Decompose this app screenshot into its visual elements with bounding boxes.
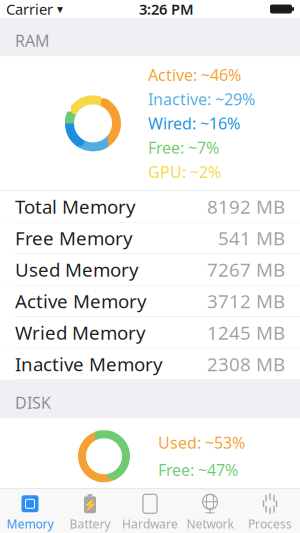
- staticText: Active: ~46%: [148, 64, 241, 85]
- staticText: 3:26 PM: [139, 0, 194, 19]
- staticText: 1245 MB: [207, 320, 285, 345]
- button[interactable]: Network: [180, 489, 240, 533]
- staticText: Wired: ~16%: [148, 113, 240, 134]
- button[interactable]: ⚡: [60, 489, 120, 533]
- staticText: 7267 MB: [207, 257, 285, 282]
- staticText: 3712 MB: [207, 289, 285, 313]
- button[interactable]: Used Memory: [0, 254, 300, 285]
- button[interactable]: Process: [240, 489, 300, 533]
- staticText: Battery: [69, 516, 110, 532]
- button[interactable]: Memory: [0, 489, 60, 533]
- button[interactable]: Wried Memory: [0, 317, 300, 348]
- staticText: Active Memory: [15, 289, 147, 313]
- staticText: Wried Memory: [15, 320, 146, 345]
- staticText: Used: ~53%: [158, 432, 245, 453]
- staticText: Memory: [6, 516, 53, 532]
- button[interactable]: Free Memory: [0, 222, 300, 254]
- staticText: Total Memory: [15, 194, 136, 219]
- staticText: Free: ~7%: [148, 137, 219, 158]
- staticText: ⚡: [82, 498, 97, 512]
- staticText: Network: [186, 516, 233, 532]
- staticText: Free: ~47%: [158, 459, 238, 480]
- staticText: Used Memory: [15, 257, 139, 282]
- staticText: Free Disk Space: [15, 498, 153, 523]
- button[interactable]: Used Disk Space: [0, 526, 300, 533]
- staticText: DISK: [15, 392, 51, 413]
- button[interactable]: Active Memory: [0, 285, 300, 317]
- staticText: Inactive: ~29%: [148, 88, 255, 110]
- button[interactable]: Free Disk Space: [0, 495, 300, 526]
- staticText: 541 MB: [218, 226, 285, 250]
- staticText: 8192 MB: [207, 194, 285, 219]
- staticText: Free Memory: [15, 226, 133, 250]
- staticText: Used Disk Space: [15, 529, 159, 533]
- staticText: 2308 MB: [207, 352, 285, 376]
- button[interactable]: Total Memory: [0, 191, 300, 222]
- staticText: Hardware: [122, 516, 178, 532]
- staticText: Process: [248, 516, 292, 532]
- staticText: GPU: ~2%: [148, 161, 221, 182]
- staticText: Inactive Memory: [15, 352, 163, 376]
- staticText: 50.97 GB: [205, 498, 285, 523]
- button[interactable]: Hardware: [120, 489, 180, 533]
- button[interactable]: Inactive Memory: [0, 348, 300, 380]
- staticText: ▾: [53, 2, 63, 16]
- staticText: RAM: [15, 30, 50, 51]
- staticText: Carrier: [6, 0, 53, 19]
